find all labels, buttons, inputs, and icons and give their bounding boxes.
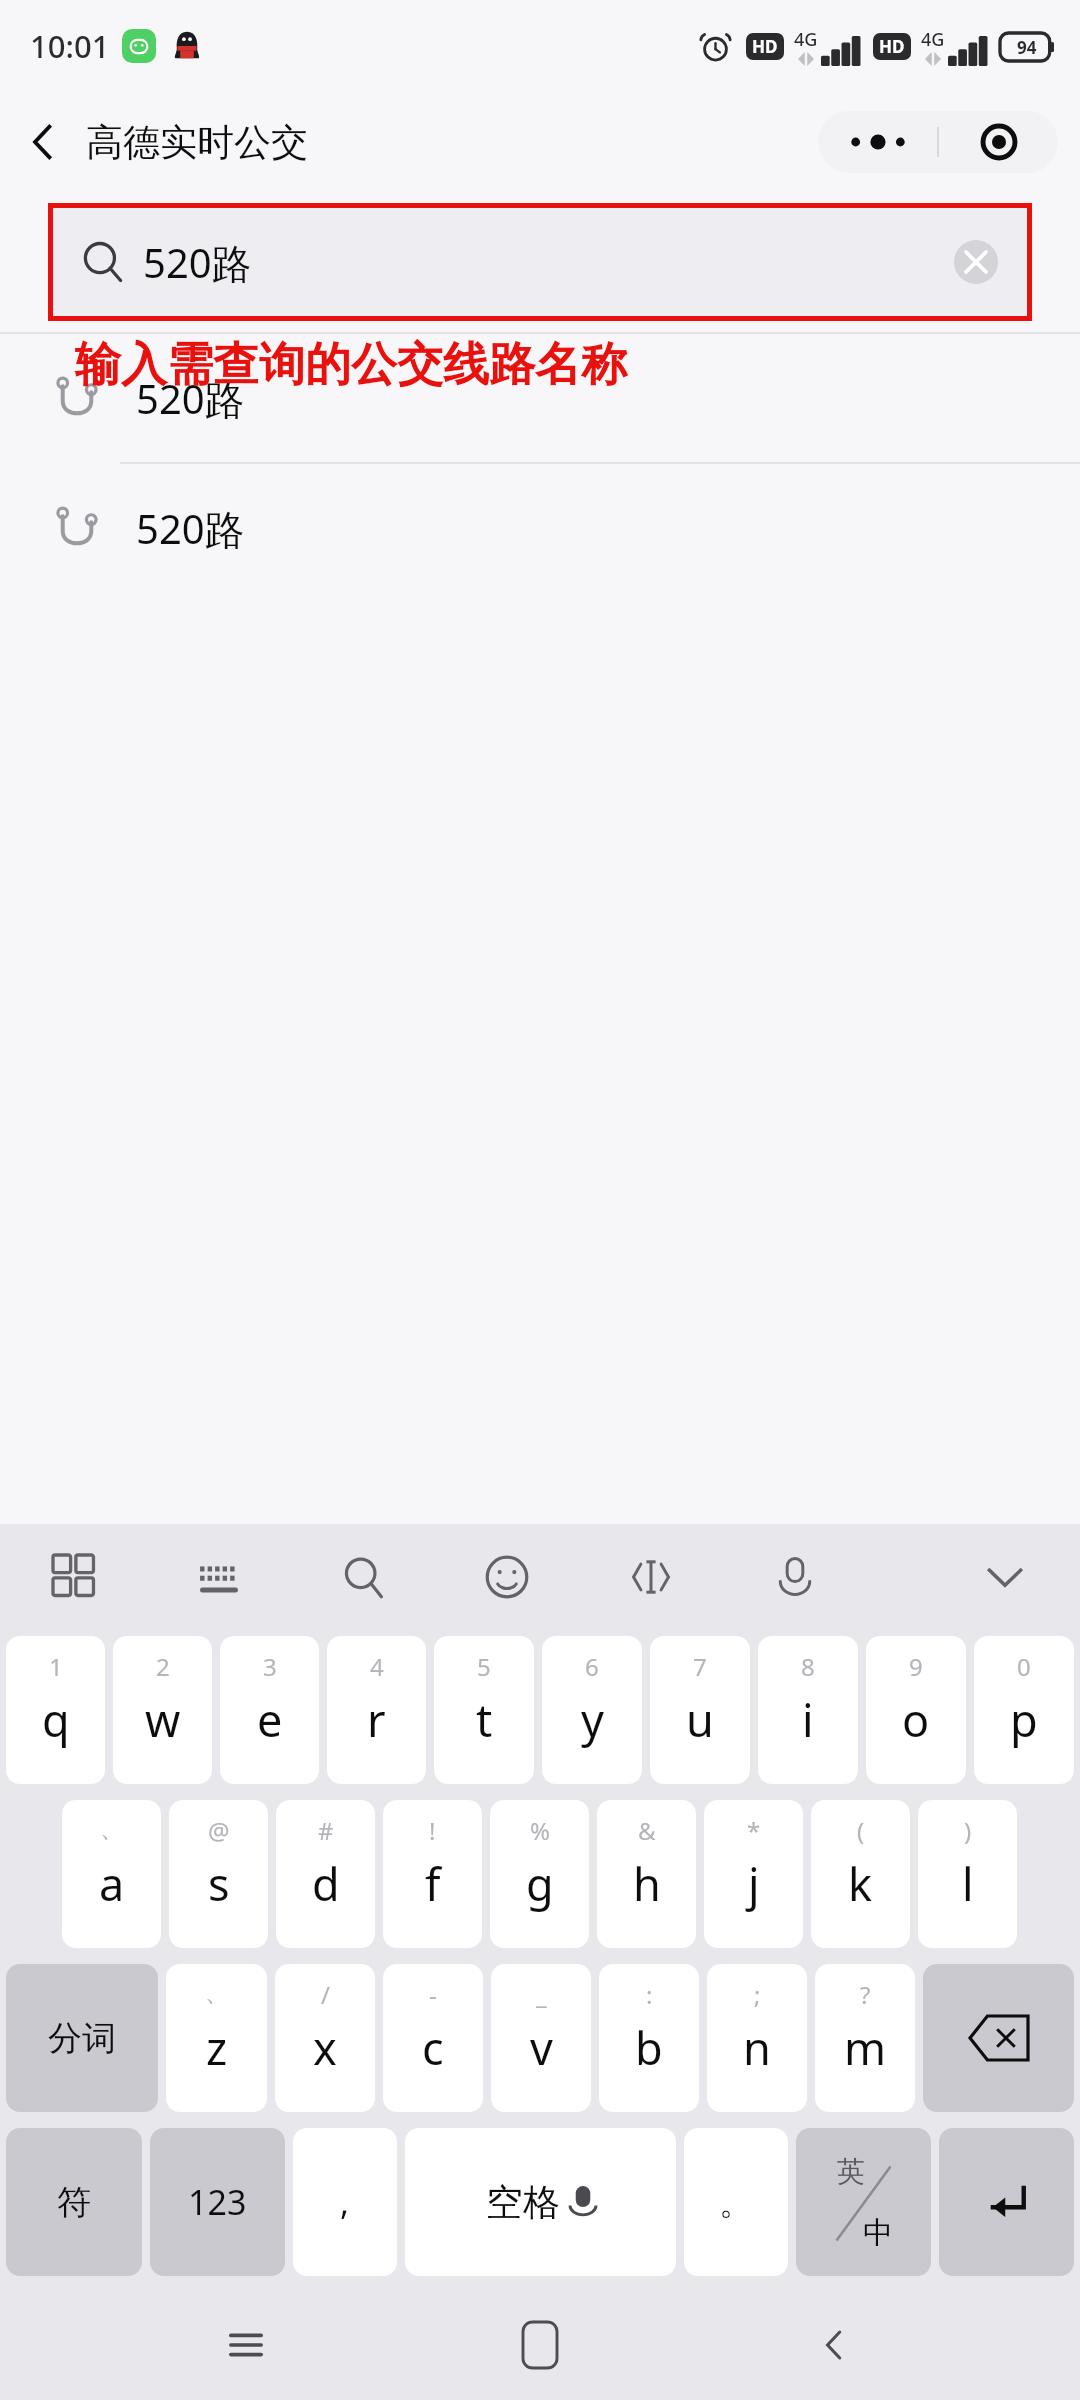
button[interactable]: Panels — [40, 1542, 110, 1612]
staticText: / — [321, 1978, 330, 2011]
button[interactable]: # — [276, 1800, 375, 1948]
staticText: : — [646, 1978, 653, 2011]
staticText: 0 — [1017, 1650, 1031, 1683]
button[interactable]: 符 — [6, 2128, 142, 2276]
button[interactable]: 123 — [150, 2128, 285, 2276]
button[interactable]: 。 — [684, 2128, 788, 2276]
button[interactable]: 7 — [650, 1636, 750, 1784]
staticText: 1 — [49, 1650, 63, 1683]
button[interactable]: : — [599, 1964, 699, 2112]
staticText: i — [802, 1689, 814, 1750]
button[interactable]: Emoji — [472, 1542, 542, 1612]
staticText: y — [581, 1689, 604, 1750]
staticText: p — [1010, 1689, 1038, 1750]
button[interactable]: Backspace — [923, 1964, 1074, 2112]
button[interactable]: Search — [328, 1542, 398, 1612]
staticText: 4 — [370, 1650, 384, 1683]
button[interactable]: 520路 — [0, 464, 1080, 592]
staticText: 输入需查询的公交线路名称 — [75, 336, 627, 394]
button[interactable]: Enter — [939, 2128, 1074, 2276]
staticText: & — [638, 1814, 656, 1847]
staticText: b — [635, 2017, 663, 2078]
button[interactable]: ; — [707, 1964, 807, 2112]
button[interactable]: 4 — [327, 1636, 426, 1784]
button[interactable]: 2 — [113, 1636, 212, 1784]
staticText: 中 — [863, 2214, 893, 2252]
button[interactable]: Keyboard — [184, 1542, 254, 1612]
button[interactable]: * — [704, 1800, 803, 1948]
staticText: 9 — [909, 1650, 923, 1683]
button[interactable]: Back — [0, 99, 86, 185]
staticText: 10:01 — [30, 25, 110, 67]
staticText: 高德实时公交 — [86, 119, 308, 166]
button[interactable]: ! — [383, 1800, 482, 1948]
button[interactable]: Back — [786, 2297, 882, 2393]
button[interactable]: ( — [811, 1800, 910, 1948]
button[interactable]: 、 — [62, 1800, 161, 1948]
staticText: k — [848, 1853, 873, 1914]
staticText: 94 — [1017, 36, 1037, 59]
button[interactable]: 0 — [974, 1636, 1074, 1784]
staticText: 。 — [719, 2181, 753, 2224]
staticText: 5 — [477, 1650, 491, 1683]
button[interactable]: 3 — [220, 1636, 319, 1784]
button[interactable]: Home — [492, 2297, 588, 2393]
staticText: ) — [964, 1814, 972, 1847]
staticText: f — [425, 1853, 441, 1914]
staticText: ; — [754, 1978, 761, 2011]
button[interactable]: 520路 — [53, 208, 1027, 316]
button[interactable]: Hide keyboard — [970, 1542, 1040, 1612]
button[interactable]: Move cursor — [616, 1542, 686, 1612]
button[interactable]: , — [293, 2128, 397, 2276]
button[interactable]: Voice input — [760, 1542, 830, 1612]
button[interactable]: - — [383, 1964, 483, 2112]
button[interactable]: & — [597, 1800, 696, 1948]
staticText: n — [743, 2017, 771, 2078]
staticText: m — [844, 2017, 887, 2078]
staticText: c — [422, 2017, 444, 2078]
staticText: HD — [752, 35, 778, 58]
button[interactable]: 520路 — [0, 334, 1080, 462]
button[interactable]: _ — [491, 1964, 591, 2112]
staticText: h — [633, 1853, 661, 1914]
button[interactable]: ? — [815, 1964, 915, 2112]
staticText: x — [313, 2017, 337, 2078]
button[interactable]: 、 — [166, 1964, 267, 2112]
button[interactable]: % — [490, 1800, 589, 1948]
button[interactable]: More — [818, 111, 937, 173]
button[interactable]: @ — [169, 1800, 268, 1948]
staticText: j — [748, 1853, 760, 1914]
button[interactable]: 英 — [796, 2128, 931, 2276]
staticText: 符 — [57, 2181, 91, 2224]
staticText: o — [902, 1689, 930, 1750]
staticText: 、 — [100, 1814, 124, 1844]
staticText: e — [257, 1689, 283, 1750]
button[interactable]: 5 — [434, 1636, 534, 1784]
staticText: 2 — [156, 1650, 170, 1683]
button[interactable]: 空格 — [405, 2128, 676, 2276]
button[interactable]: 分词 — [6, 1964, 158, 2112]
staticText: z — [206, 2017, 228, 2078]
staticText: ( — [857, 1814, 865, 1847]
button[interactable]: Close — [939, 111, 1058, 173]
button[interactable]: 1 — [6, 1636, 105, 1784]
staticText: 分词 — [48, 2017, 116, 2060]
staticText: v — [530, 2017, 553, 2078]
button[interactable]: 8 — [758, 1636, 858, 1784]
staticText: HD — [879, 35, 905, 58]
staticText: # — [318, 1814, 334, 1847]
button[interactable]: ) — [918, 1800, 1017, 1948]
button[interactable]: Recents — [198, 2297, 294, 2393]
button[interactable]: Clear — [953, 239, 999, 285]
staticText: % — [530, 1814, 550, 1847]
button[interactable]: / — [275, 1964, 375, 2112]
staticText: 520路 — [143, 235, 252, 290]
staticText: l — [962, 1853, 974, 1914]
staticText: , — [340, 2179, 350, 2225]
staticText: 、 — [205, 1978, 229, 2008]
staticText: ? — [860, 1978, 871, 2011]
staticText: w — [145, 1689, 181, 1750]
staticText: 7 — [693, 1650, 707, 1683]
button[interactable]: 6 — [542, 1636, 642, 1784]
button[interactable]: 9 — [866, 1636, 966, 1784]
